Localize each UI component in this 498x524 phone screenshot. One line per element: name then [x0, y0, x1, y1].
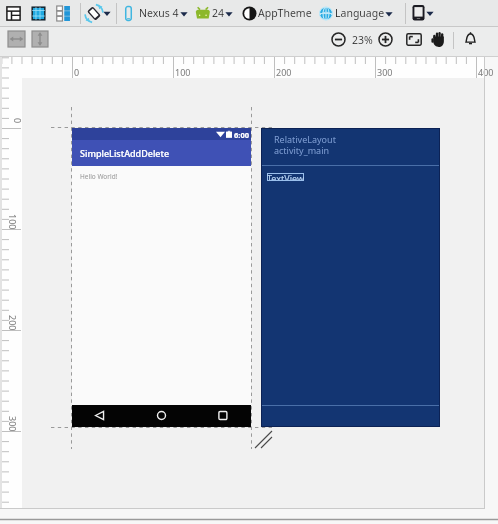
staticText: 200	[7, 315, 19, 331]
button[interactable]: Zoom to fit	[406, 33, 422, 46]
staticText: 0	[12, 118, 24, 124]
button[interactable]: Zoom in	[378, 32, 393, 47]
staticText: 200	[276, 66, 292, 78]
button[interactable]: Language	[318, 2, 393, 24]
button[interactable]: Design and blueprint	[56, 6, 71, 21]
button[interactable]: Notifications	[463, 31, 478, 46]
staticText: Hello World!	[80, 172, 118, 181]
staticText: 300	[7, 416, 19, 432]
staticText: 0	[74, 66, 80, 78]
button[interactable]: Orientation	[85, 3, 112, 24]
button[interactable]: Zoom out	[331, 32, 346, 47]
staticText: 400	[478, 66, 494, 78]
button[interactable]: RelativeLayout activity_main	[261, 128, 440, 427]
button[interactable]: 6:00	[72, 128, 251, 427]
button[interactable]: Design	[6, 6, 22, 21]
staticText: 300	[377, 66, 393, 78]
staticText: 6:00	[234, 130, 249, 140]
button[interactable]: Blueprint	[31, 6, 46, 21]
staticText: AppTheme	[258, 6, 312, 20]
button[interactable]: Nexus 4	[123, 2, 188, 24]
button[interactable]: AppTheme	[242, 2, 312, 24]
button[interactable]: Device configuration	[410, 3, 435, 22]
staticText: 24	[212, 6, 225, 20]
staticText: 100	[7, 214, 19, 230]
staticText: Language	[335, 6, 385, 20]
staticText: SimpleListAddDelete	[80, 147, 170, 159]
button[interactable]: TextView	[267, 173, 304, 181]
button[interactable]: Expand vertically	[32, 31, 48, 47]
staticText: TextView	[267, 172, 304, 180]
staticText: Nexus 4	[139, 6, 179, 20]
staticText: 23%	[352, 33, 373, 47]
button[interactable]: Pan	[431, 32, 445, 47]
button[interactable]: Expand horizontally	[8, 31, 25, 47]
staticText: RelativeLayout activity_main	[274, 133, 336, 157]
button[interactable]: 24	[195, 2, 233, 24]
staticText: 100	[175, 66, 191, 78]
